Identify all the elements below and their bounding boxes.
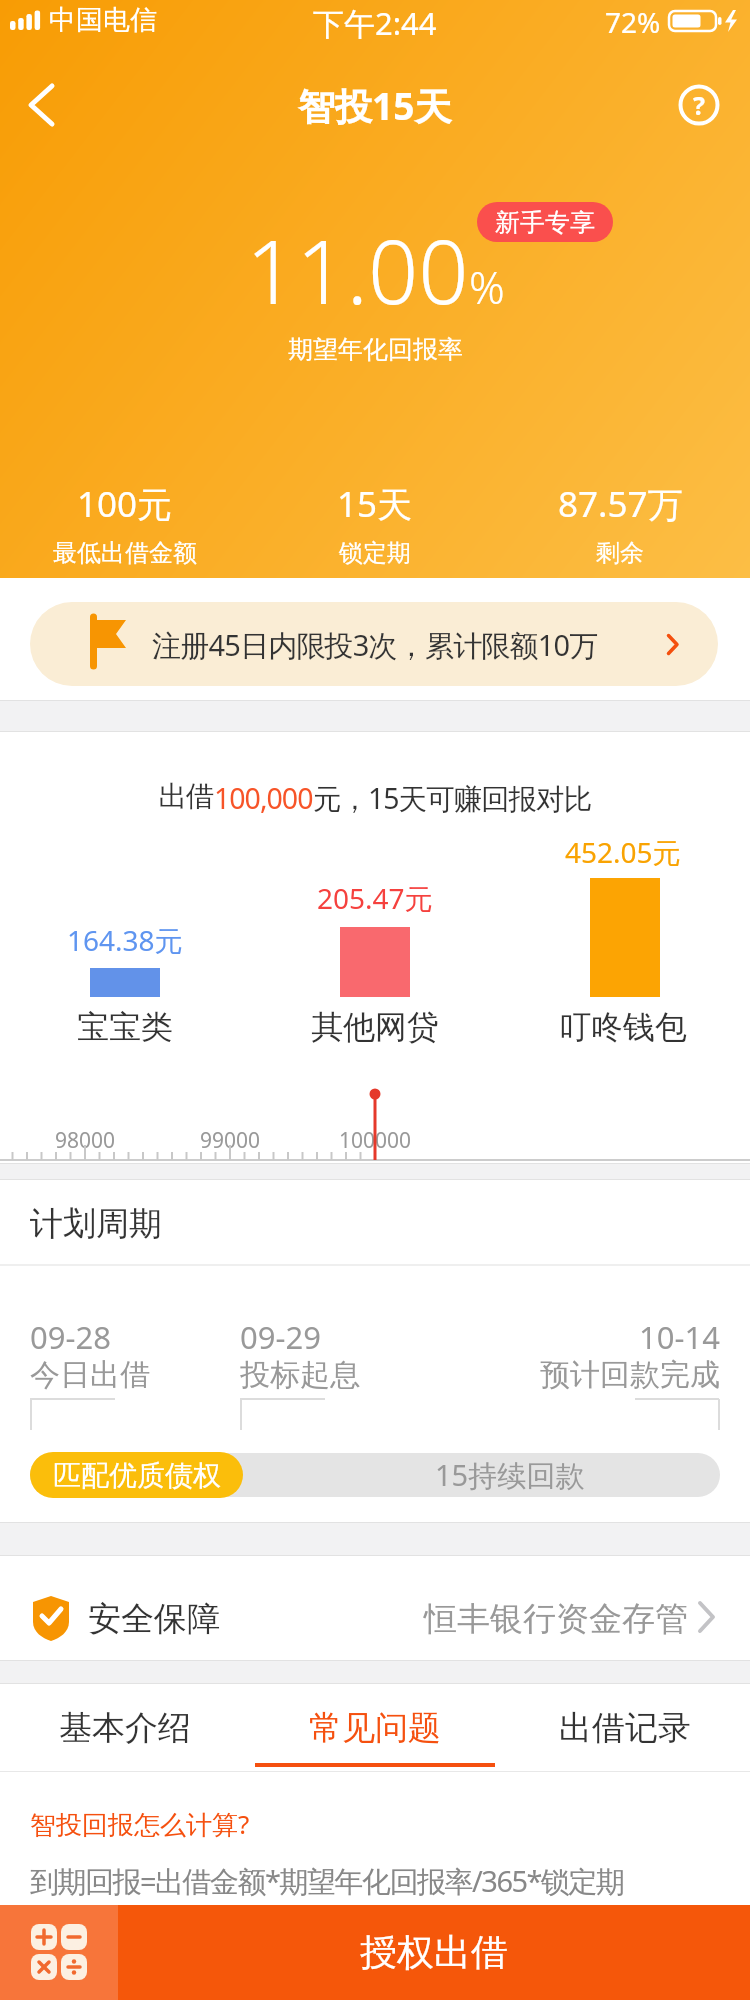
staticText: 其他网贷 — [311, 1007, 439, 1047]
staticText: 恒丰银行资金存管 — [424, 1598, 688, 1640]
staticText: 预计回款完成 — [540, 1356, 720, 1394]
button[interactable]: 安全保障 — [0, 1556, 750, 1660]
staticText: 智投15天 — [298, 80, 452, 131]
staticText: 宝宝类 — [77, 1007, 173, 1047]
staticText: 100000 — [339, 1126, 412, 1155]
staticText: 新手专享 — [495, 207, 595, 238]
staticText: 叮咚钱包 — [559, 1007, 687, 1047]
staticText: 安全保障 — [88, 1598, 220, 1640]
staticText: ? — [693, 88, 705, 122]
button[interactable]: 基本介绍 — [0, 1684, 250, 1772]
staticText: 中国电信 — [49, 3, 157, 37]
button[interactable]: 出借记录 — [500, 1684, 750, 1772]
staticText: 常见问题 — [309, 1707, 441, 1749]
staticText: 15持续回款 — [435, 1455, 585, 1495]
staticText: 72% — [605, 3, 661, 41]
button[interactable]: 常见问题 — [250, 1684, 500, 1772]
staticText: 计划周期 — [30, 1203, 162, 1245]
staticText: 100,000 — [214, 779, 313, 818]
staticText: 元，15天可赚回报对比 — [313, 779, 592, 818]
button[interactable]: 注册45日内限投3次，累计限额10万 — [30, 602, 718, 686]
staticText: 到期回报=出借金额*期望年化回报率/365*锁定期 — [30, 1861, 624, 1901]
staticText: 164.38元 — [67, 921, 183, 959]
staticText: 匹配优质债权 — [53, 1458, 221, 1493]
staticText: 10-14 — [639, 1316, 720, 1358]
staticText: 205.47元 — [317, 879, 433, 917]
staticText: 智投回报怎么计算? — [30, 1806, 250, 1842]
staticText: 11.00 — [246, 210, 469, 330]
staticText: 基本介绍 — [59, 1707, 191, 1749]
button[interactable] — [28, 84, 56, 126]
staticText: 09-28 — [30, 1316, 111, 1358]
staticText: % — [469, 257, 505, 317]
staticText: 下午2:44 — [313, 2, 437, 44]
button[interactable]: ? — [679, 85, 719, 125]
staticText: 注册45日内限投3次，累计限额10万 — [152, 625, 598, 665]
staticText: 100元 — [77, 480, 173, 528]
staticText: 99000 — [200, 1126, 261, 1155]
staticText: 授权出借 — [360, 1929, 508, 1976]
staticText: 今日出借 — [30, 1356, 150, 1394]
button[interactable]: 授权出借 — [118, 1905, 750, 2000]
staticText: 15天 — [337, 480, 413, 528]
staticText: 出借 — [159, 779, 214, 815]
staticText: 期望年化回报率 — [288, 334, 463, 365]
staticText: 09-29 — [240, 1316, 321, 1358]
staticText: 98000 — [55, 1126, 116, 1155]
staticText: 452.05元 — [565, 833, 681, 871]
staticText: 投标起息 — [240, 1356, 360, 1394]
button[interactable] — [0, 1905, 118, 2000]
staticText: 锁定期 — [339, 538, 411, 568]
staticText: 出借记录 — [559, 1707, 691, 1749]
staticText: 最低出借金额 — [53, 538, 197, 568]
staticText: 87.57万 — [558, 480, 683, 528]
staticText: 剩余 — [596, 538, 644, 568]
